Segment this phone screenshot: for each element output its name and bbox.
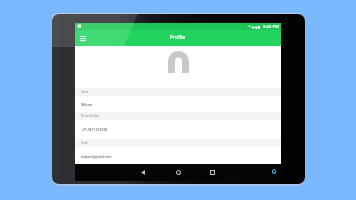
staticText: Email xyxy=(81,141,88,145)
button[interactable]: Switch keyboard xyxy=(269,167,278,176)
button[interactable]: Phone Number xyxy=(75,112,281,139)
staticText: Phone Number xyxy=(81,114,100,118)
button[interactable]: Home xyxy=(172,166,184,178)
staticText: wilson@gmail.com xyxy=(81,154,112,159)
button[interactable]: Email xyxy=(75,139,281,166)
button[interactable]: Open navigation menu xyxy=(77,32,89,44)
button[interactable]: Back xyxy=(137,166,149,178)
staticText: +91-9611672928 xyxy=(81,127,108,132)
staticText: Wilson xyxy=(81,102,92,107)
staticText: 9:43 PM xyxy=(263,24,279,30)
button[interactable]: Name xyxy=(75,88,281,112)
staticText: Name xyxy=(81,90,89,94)
button[interactable]: Recent apps xyxy=(206,166,218,178)
staticText: Profile xyxy=(170,34,186,41)
